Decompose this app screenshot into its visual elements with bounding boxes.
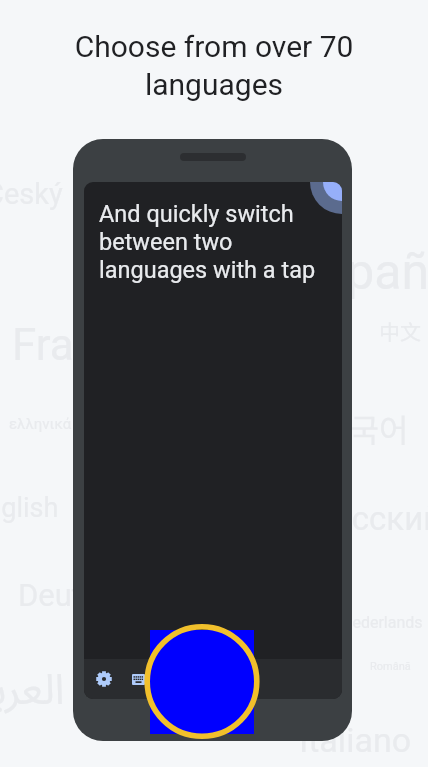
- staticText: 한국어: [320, 405, 409, 451]
- staticText: ελληνικά: [9, 415, 72, 433]
- staticText: Deutsch: [18, 577, 132, 613]
- staticText: русский: [318, 499, 428, 538]
- staticText: English: [0, 492, 59, 524]
- staticText: Český: [0, 177, 63, 211]
- staticText: العربية: [0, 646, 65, 735]
- staticText: Română: [370, 660, 411, 673]
- staticText: And quickly switch between two languages…: [99, 200, 316, 284]
- button[interactable]: Settings: [87, 659, 121, 699]
- staticText: Choose from over 70 languages: [36, 29, 392, 102]
- staticText: 中文: [379, 316, 421, 346]
- button[interactable]: Keyboard: [121, 659, 155, 699]
- staticText: Italiano: [299, 720, 412, 760]
- staticText: Español: [292, 243, 428, 302]
- staticText: Nederlands: [341, 613, 423, 632]
- staticText: Français: [12, 319, 179, 371]
